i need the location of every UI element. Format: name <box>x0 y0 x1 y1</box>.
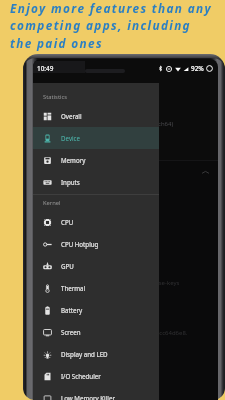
staticText: Statistics <box>43 93 68 101</box>
staticText: Inputs <box>61 178 80 186</box>
staticText: Enjoy more features than any competing a… <box>10 0 212 51</box>
staticText: Kernel <box>43 199 61 207</box>
button[interactable]: Memory <box>33 149 159 171</box>
staticText: Low Memory Killer <box>61 394 115 400</box>
staticText: CPU Hotplug <box>61 240 99 248</box>
button[interactable]: CPU Hotplug <box>33 233 159 255</box>
staticText: CPU <box>61 218 74 226</box>
staticText: ch64) <box>158 120 174 128</box>
button[interactable]: Overall <box>33 105 159 127</box>
button[interactable]: Display and LED <box>33 343 159 365</box>
button[interactable]: Device <box>33 127 159 149</box>
staticText: Display and LED <box>61 350 108 358</box>
button[interactable]: Thermal <box>33 277 159 299</box>
staticText: Thermal <box>61 284 86 292</box>
staticText: Overall <box>61 112 82 120</box>
staticText: lfdcc64d6e8. <box>152 329 188 337</box>
button[interactable]: Inputs <box>33 171 159 193</box>
button[interactable]: GPU <box>33 255 159 277</box>
button[interactable]: CPU <box>33 211 159 233</box>
button[interactable]: Screen <box>33 321 159 343</box>
staticText: Memory <box>61 156 86 164</box>
staticText: Screen <box>61 328 81 336</box>
staticText: GPU <box>61 262 74 270</box>
button[interactable]: Battery <box>33 299 159 321</box>
staticText: Battery <box>61 306 83 314</box>
staticText: 92% <box>191 64 204 73</box>
button[interactable]: Low Memory Killer <box>33 387 159 400</box>
staticText: 10:49 <box>37 64 54 73</box>
button[interactable]: I/O Scheduler <box>33 365 159 387</box>
staticText: Device <box>61 134 81 142</box>
staticText: I/O Scheduler <box>61 372 101 380</box>
staticText: ease-keys <box>152 279 180 287</box>
